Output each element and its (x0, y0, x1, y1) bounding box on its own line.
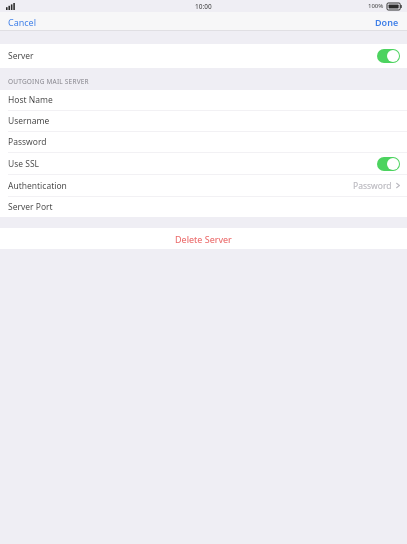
staticText: 10:00 (195, 2, 212, 11)
staticText: Password (353, 180, 392, 192)
staticText: OUTGOING MAIL SERVER (8, 77, 89, 86)
button[interactable]: Server (0, 44, 407, 68)
staticText: 100% (368, 2, 384, 10)
button[interactable]: Password (0, 132, 407, 152)
staticText: Password (8, 136, 47, 148)
staticText: Delete Server (175, 233, 232, 245)
button[interactable]: Use SSL (0, 153, 407, 174)
button[interactable]: Username (0, 111, 407, 131)
staticText: Done (375, 16, 399, 28)
button[interactable]: Delete Server (0, 228, 407, 249)
staticText: Server (8, 50, 34, 62)
staticText: Use SSL (8, 158, 40, 170)
staticText: Server Port (8, 201, 53, 213)
staticText: Authentication (8, 180, 67, 192)
button[interactable]: Host Name (0, 90, 407, 110)
button[interactable]: Toggle (377, 157, 400, 171)
staticText: Cancel (8, 16, 37, 28)
staticText: Host Name (8, 94, 53, 106)
button[interactable]: Done (367, 13, 407, 31)
button[interactable]: Cancel (0, 13, 45, 31)
button[interactable]: Authentication (0, 175, 407, 196)
button[interactable]: Toggle (377, 49, 400, 63)
button[interactable]: Server Port (0, 197, 407, 217)
staticText: Username (8, 115, 50, 127)
